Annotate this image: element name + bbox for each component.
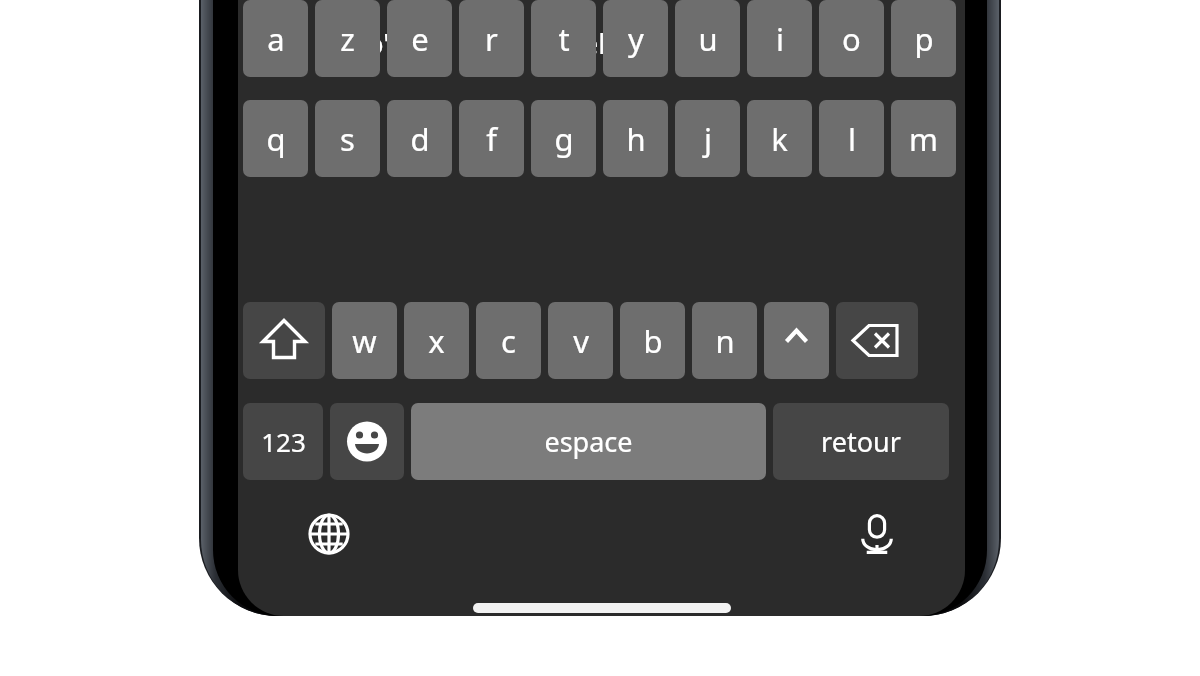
button[interactable]: espace bbox=[411, 403, 766, 480]
button[interactable]: Shift bbox=[243, 302, 325, 379]
staticText: q bbox=[266, 118, 286, 160]
staticText: v bbox=[573, 320, 589, 362]
button[interactable]: Emoji bbox=[330, 403, 404, 480]
staticText: h bbox=[626, 118, 646, 160]
button[interactable]: Dictation bbox=[841, 498, 913, 570]
button[interactable]: j bbox=[675, 100, 740, 177]
button[interactable]: s bbox=[315, 100, 380, 177]
staticText: y bbox=[628, 18, 644, 60]
button[interactable]: Change keyboard language bbox=[293, 498, 365, 570]
button[interactable]: b bbox=[620, 302, 685, 379]
button[interactable]: x bbox=[404, 302, 469, 379]
staticText: 👋 bbox=[825, 26, 863, 61]
button[interactable]: w bbox=[332, 302, 397, 379]
staticText: n bbox=[715, 320, 735, 362]
staticText: z bbox=[340, 18, 355, 60]
button[interactable]: i bbox=[747, 0, 812, 77]
staticText: w bbox=[352, 320, 377, 362]
staticText: a bbox=[267, 18, 285, 60]
button[interactable]: Circumflex accent bbox=[764, 302, 829, 379]
button[interactable]: Backspace bbox=[836, 302, 918, 379]
staticText: espace bbox=[544, 423, 633, 460]
staticText: p bbox=[914, 18, 934, 60]
button[interactable]: Hellos bbox=[481, 0, 723, 86]
button[interactable]: g bbox=[531, 100, 596, 177]
staticText: f bbox=[486, 118, 497, 160]
button[interactable]: k bbox=[747, 100, 812, 177]
staticText: m bbox=[909, 118, 938, 160]
staticText: o bbox=[842, 18, 861, 60]
staticText: s bbox=[340, 118, 355, 160]
button[interactable]: 👋 bbox=[723, 0, 965, 86]
staticText: b bbox=[643, 320, 663, 362]
button[interactable]: l bbox=[819, 100, 884, 177]
staticText: d bbox=[410, 118, 430, 160]
staticText: t bbox=[558, 18, 570, 60]
staticText: i bbox=[776, 18, 784, 60]
button[interactable]: h bbox=[603, 100, 668, 177]
button[interactable]: Hello's bbox=[238, 0, 481, 86]
staticText: retour bbox=[821, 423, 901, 460]
staticText: Hellos bbox=[563, 25, 642, 62]
staticText: Hello's bbox=[318, 25, 402, 62]
button[interactable]: m bbox=[891, 100, 956, 177]
staticText: 123 bbox=[261, 424, 306, 459]
button[interactable]: e bbox=[387, 0, 452, 77]
button[interactable]: p bbox=[891, 0, 956, 77]
button[interactable]: n bbox=[692, 302, 757, 379]
button[interactable]: r bbox=[459, 0, 524, 77]
button[interactable]: d bbox=[387, 100, 452, 177]
button[interactable]: c bbox=[476, 302, 541, 379]
button[interactable]: o bbox=[819, 0, 884, 77]
staticText: r bbox=[485, 18, 498, 60]
staticText: l bbox=[848, 118, 856, 160]
button[interactable]: y bbox=[603, 0, 668, 77]
staticText: c bbox=[501, 320, 516, 362]
button[interactable]: f bbox=[459, 100, 524, 177]
button[interactable]: t bbox=[531, 0, 596, 77]
button[interactable]: 123 bbox=[243, 403, 323, 480]
button[interactable]: retour bbox=[773, 403, 949, 480]
staticText: e bbox=[411, 18, 429, 60]
button[interactable]: v bbox=[548, 302, 613, 379]
button[interactable]: u bbox=[675, 0, 740, 77]
button[interactable]: q bbox=[243, 100, 308, 177]
staticText: k bbox=[771, 118, 788, 160]
staticText: x bbox=[428, 320, 445, 362]
button[interactable]: a bbox=[243, 0, 308, 77]
staticText: u bbox=[698, 18, 718, 60]
button[interactable]: z bbox=[315, 0, 380, 77]
staticText: g bbox=[554, 118, 574, 160]
staticText: j bbox=[704, 118, 712, 160]
